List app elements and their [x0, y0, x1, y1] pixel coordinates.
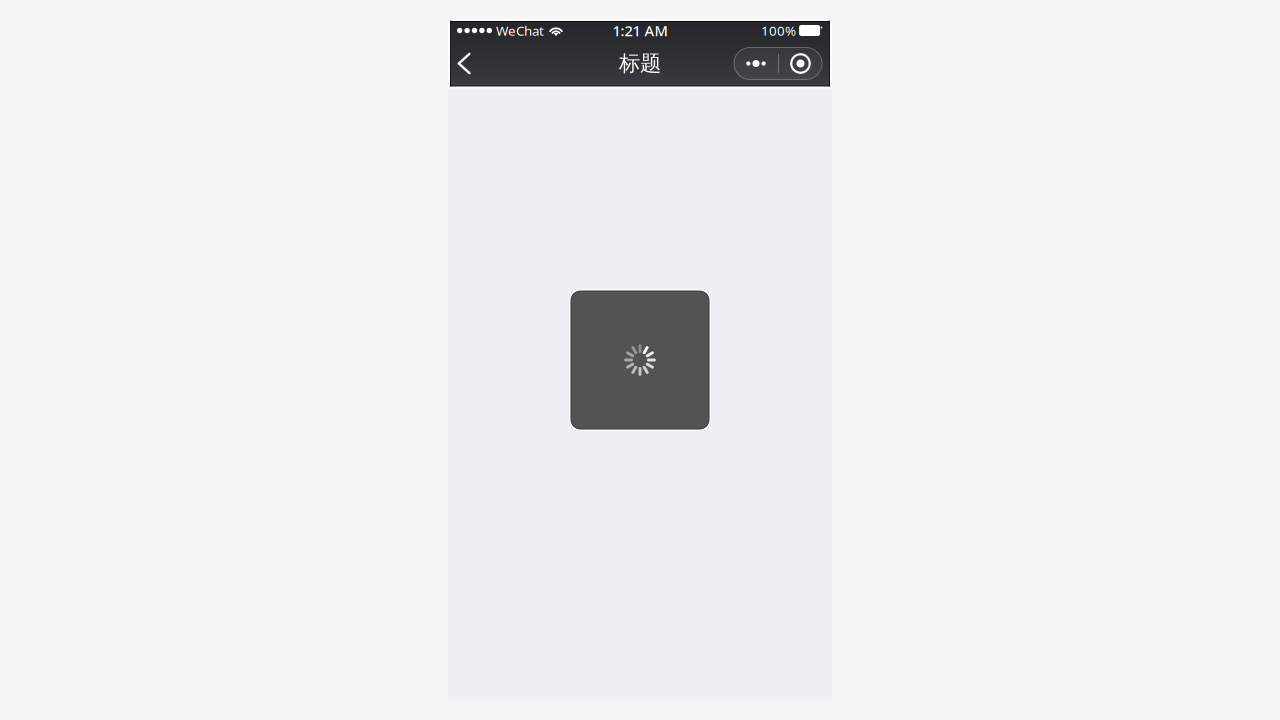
staticText: 100% [761, 22, 796, 39]
button[interactable]: More options [734, 47, 822, 79]
staticText: 1:21 AM [612, 21, 667, 40]
staticText: WeChat [496, 22, 544, 39]
staticText: 标题 [619, 50, 661, 77]
button[interactable]: Back [450, 41, 478, 85]
